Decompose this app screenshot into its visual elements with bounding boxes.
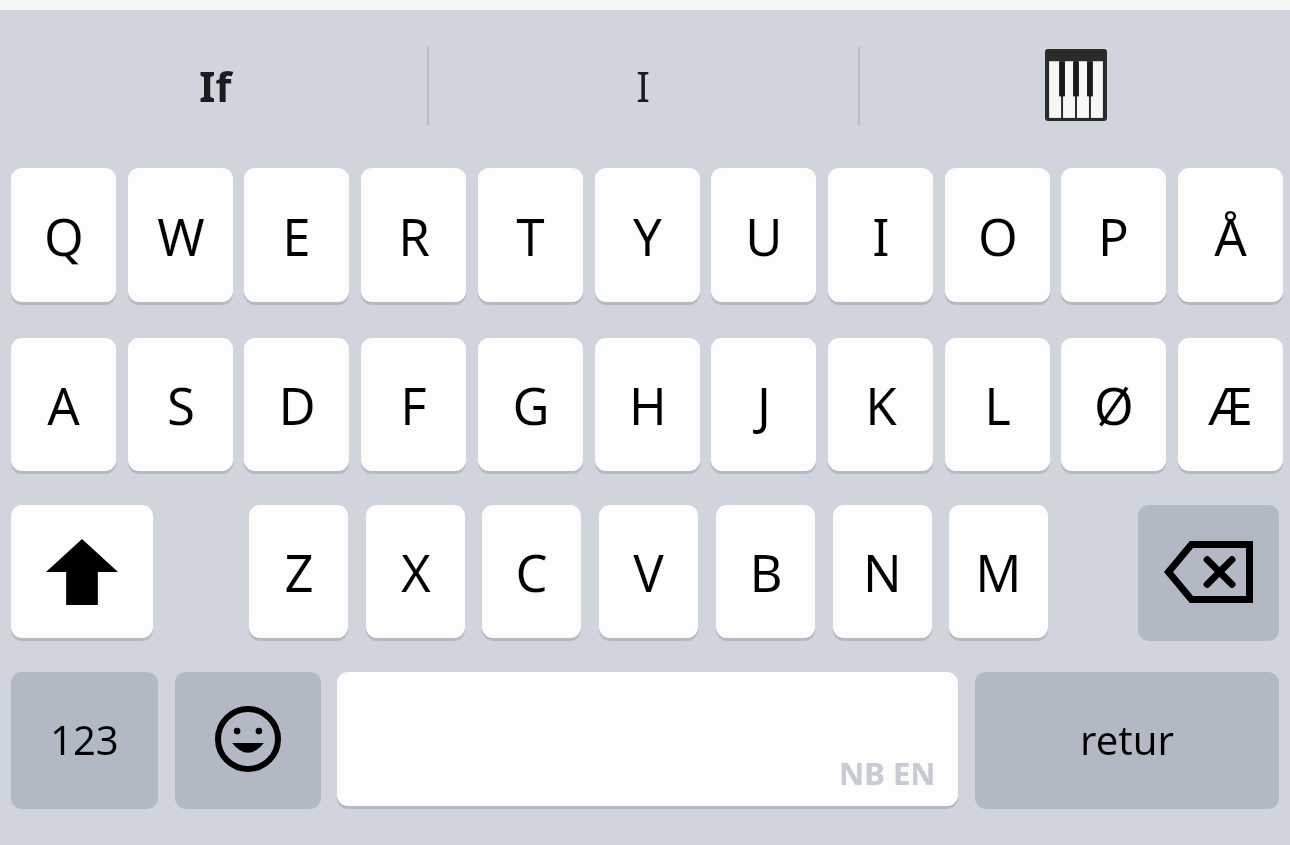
staticText: T xyxy=(516,201,545,270)
staticText: Ø xyxy=(1094,370,1134,439)
button[interactable]: I xyxy=(434,30,852,140)
button[interactable]: Space xyxy=(337,672,958,810)
button[interactable]: R xyxy=(361,168,466,306)
staticText: E xyxy=(282,201,311,270)
staticText: K xyxy=(865,370,897,439)
staticText: 123 xyxy=(50,712,119,766)
button[interactable]: J xyxy=(711,338,816,475)
staticText: M xyxy=(975,537,1022,606)
staticText: D xyxy=(278,370,316,439)
staticText: N xyxy=(863,537,902,606)
button[interactable]: T xyxy=(478,168,583,306)
staticText: J xyxy=(757,370,771,439)
button[interactable]: I xyxy=(828,168,933,306)
staticText: C xyxy=(515,537,548,606)
staticText: U xyxy=(745,201,783,270)
button[interactable]: Å xyxy=(1178,168,1283,306)
staticText: S xyxy=(167,370,195,439)
button[interactable]: retur xyxy=(975,672,1279,810)
button[interactable]: Æ xyxy=(1178,338,1283,475)
staticText: R xyxy=(398,201,430,270)
staticText: If xyxy=(199,57,232,114)
staticText: I xyxy=(872,201,890,270)
button[interactable]: Y xyxy=(595,168,700,306)
button[interactable]: N xyxy=(833,505,932,642)
button[interactable]: If xyxy=(10,30,420,140)
button[interactable]: B xyxy=(716,505,815,642)
staticText: Å xyxy=(1214,201,1247,270)
staticText: retur xyxy=(1080,712,1174,766)
button[interactable]: H xyxy=(595,338,700,475)
staticText: P xyxy=(1098,201,1129,270)
staticText: O xyxy=(978,201,1018,270)
button[interactable]: Shift xyxy=(11,505,153,642)
button[interactable]: Musical keyboard xyxy=(866,30,1286,140)
button[interactable]: F xyxy=(361,338,466,475)
button[interactable]: E xyxy=(244,168,349,306)
button[interactable]: V xyxy=(599,505,698,642)
button[interactable]: G xyxy=(478,338,583,475)
button[interactable]: Ø xyxy=(1061,338,1166,475)
button[interactable]: X xyxy=(366,505,465,642)
button[interactable]: U xyxy=(711,168,816,306)
button[interactable]: Delete xyxy=(1138,505,1279,642)
staticText: A xyxy=(47,370,80,439)
button[interactable]: Emoji xyxy=(175,672,321,810)
button[interactable]: P xyxy=(1061,168,1166,306)
button[interactable]: Q xyxy=(11,168,116,306)
staticText: X xyxy=(401,537,431,606)
staticText: L xyxy=(984,370,1011,439)
button[interactable]: S xyxy=(128,338,233,475)
button[interactable]: Z xyxy=(249,505,348,642)
button[interactable]: K xyxy=(828,338,933,475)
staticText: NB EN xyxy=(839,752,936,794)
button[interactable]: W xyxy=(128,168,233,306)
staticText: Æ xyxy=(1208,370,1253,439)
staticText: Q xyxy=(44,201,84,270)
staticText: B xyxy=(749,537,783,606)
button[interactable]: D xyxy=(244,338,349,475)
staticText: W xyxy=(157,201,205,270)
button[interactable]: L xyxy=(945,338,1050,475)
button[interactable]: 123 xyxy=(11,672,158,810)
staticText: Z xyxy=(284,537,314,606)
staticText: V xyxy=(633,537,664,606)
button[interactable]: M xyxy=(949,505,1048,642)
button[interactable]: C xyxy=(482,505,581,642)
staticText: F xyxy=(400,370,427,439)
staticText: I xyxy=(636,57,651,114)
button[interactable]: O xyxy=(945,168,1050,306)
staticText: Y xyxy=(633,201,662,270)
staticText: H xyxy=(629,370,667,439)
button[interactable]: A xyxy=(11,338,116,475)
staticText: G xyxy=(512,370,550,439)
